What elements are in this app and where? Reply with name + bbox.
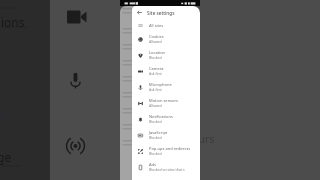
button[interactable]: JavaScript xyxy=(132,127,200,143)
staticText: Motion sensors xyxy=(149,98,179,103)
button[interactable]: Microphone xyxy=(132,79,200,95)
staticText: Location xyxy=(149,50,166,55)
button[interactable]: Pop-ups and redirects xyxy=(132,143,200,159)
button[interactable]: Notifications xyxy=(132,111,200,127)
staticText: Ask first xyxy=(149,87,162,92)
staticText: ions xyxy=(1,14,25,30)
staticText: Blocked xyxy=(149,151,162,156)
staticText: Blocked xyxy=(149,55,162,60)
staticText: Cookies xyxy=(149,34,164,39)
staticText: Allowed xyxy=(149,39,162,44)
button[interactable]: Camera xyxy=(132,63,200,79)
button[interactable]: Ads xyxy=(132,159,200,175)
staticText: Notifications xyxy=(149,114,173,119)
staticText: Blocked xyxy=(149,119,162,124)
staticText: Camera xyxy=(149,66,164,71)
button[interactable]: All sites xyxy=(132,19,200,31)
button[interactable]: Location xyxy=(132,47,200,63)
staticText: Blocked on sites that s xyxy=(149,167,185,172)
staticText: JavaScript xyxy=(149,130,168,135)
staticText: Blocked xyxy=(149,135,162,140)
staticText: Site settings xyxy=(147,10,175,16)
staticText: urs xyxy=(198,131,215,146)
staticText: Ads xyxy=(149,162,156,167)
staticText: Allowed xyxy=(149,103,162,108)
staticText: Pop-ups and redirects xyxy=(149,146,191,151)
staticText: All sites xyxy=(149,23,164,28)
button[interactable]: Back xyxy=(132,6,147,19)
staticText: Microphone xyxy=(149,82,172,87)
staticText: ge xyxy=(0,149,12,165)
staticText: Ask first xyxy=(149,71,162,76)
button[interactable]: Cookies xyxy=(132,31,200,47)
button[interactable]: Motion sensors xyxy=(132,95,200,111)
